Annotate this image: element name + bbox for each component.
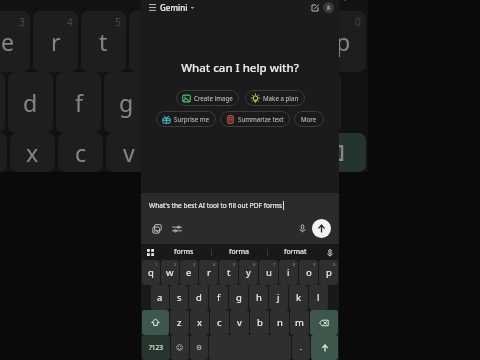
button[interactable]: t bbox=[81, 11, 126, 72]
button[interactable]: Voice input bbox=[295, 221, 310, 236]
button[interactable]: o bbox=[273, 11, 318, 72]
button[interactable]: Summarize text bbox=[220, 111, 290, 127]
button[interactable]: y bbox=[239, 260, 258, 285]
button[interactable]: Backspace bbox=[310, 310, 338, 335]
button[interactable]: u bbox=[177, 11, 222, 72]
staticText: 9 bbox=[313, 262, 316, 268]
button[interactable]: l bbox=[309, 285, 328, 310]
button[interactable]: More bbox=[294, 111, 324, 127]
button[interactable]: Backspace bbox=[298, 133, 366, 172]
button[interactable]: z bbox=[170, 310, 189, 335]
button[interactable]: p bbox=[319, 260, 338, 285]
button[interactable]: i bbox=[225, 11, 270, 72]
button[interactable]: e bbox=[180, 260, 198, 285]
staticText: 8 bbox=[293, 262, 296, 268]
button[interactable]: forma bbox=[61, 0, 194, 3]
staticText: z bbox=[177, 316, 182, 329]
staticText: Create image bbox=[194, 94, 233, 102]
staticText: Surprise me bbox=[174, 115, 210, 123]
button[interactable]: h bbox=[249, 285, 268, 310]
button[interactable]: Settings bbox=[190, 335, 208, 360]
staticText: v bbox=[123, 137, 135, 169]
staticText: 6 bbox=[253, 262, 256, 268]
button[interactable]: m bbox=[290, 310, 309, 335]
button[interactable]: s bbox=[0, 72, 5, 133]
button[interactable]: . bbox=[292, 335, 310, 360]
button[interactable]: r bbox=[199, 260, 218, 285]
button[interactable]: d bbox=[8, 72, 53, 133]
button[interactable]: g bbox=[229, 285, 248, 310]
button[interactable]: e bbox=[0, 11, 30, 72]
button[interactable]: Shift bbox=[142, 310, 169, 335]
staticText: g bbox=[236, 291, 242, 304]
button[interactable]: k bbox=[289, 285, 308, 310]
button[interactable]: a bbox=[151, 285, 169, 310]
button[interactable]: b bbox=[250, 310, 269, 335]
button[interactable]: forma bbox=[212, 247, 267, 257]
button[interactable]: j bbox=[269, 285, 288, 310]
button[interactable]: z bbox=[0, 133, 7, 172]
staticText: 3 bbox=[193, 262, 196, 268]
button[interactable]: Keyboard options bbox=[144, 246, 157, 259]
button[interactable]: i bbox=[279, 260, 298, 285]
button[interactable]: Emoji bbox=[171, 335, 189, 360]
button[interactable]: x bbox=[10, 133, 55, 172]
staticText: ☺ bbox=[176, 344, 184, 352]
button[interactable]: Account bbox=[323, 2, 334, 13]
button[interactable]: Add image bbox=[149, 221, 164, 236]
button[interactable]: Voice typing bbox=[323, 246, 336, 259]
button[interactable]: j bbox=[200, 72, 245, 133]
button[interactable]: s bbox=[170, 285, 188, 310]
button[interactable]: k bbox=[248, 72, 293, 133]
button[interactable]: Make a plan bbox=[245, 90, 305, 106]
button[interactable]: format bbox=[268, 247, 323, 257]
button[interactable]: v bbox=[106, 133, 151, 172]
button[interactable]: t bbox=[219, 260, 238, 285]
button[interactable]: d bbox=[189, 285, 208, 310]
staticText: What's the best AI tool to fill out PDF … bbox=[149, 201, 283, 210]
button[interactable]: w bbox=[161, 260, 179, 285]
button[interactable]: v bbox=[230, 310, 249, 335]
button[interactable]: l bbox=[296, 72, 341, 133]
button[interactable]: u bbox=[259, 260, 278, 285]
staticText: What can I help with? bbox=[181, 60, 299, 76]
button[interactable]: Voice typing bbox=[329, 0, 361, 8]
button[interactable]: r bbox=[33, 11, 78, 72]
staticText: 4 bbox=[67, 15, 73, 29]
button[interactable]: forms bbox=[157, 247, 211, 257]
button[interactable]: c bbox=[58, 133, 103, 172]
button[interactable]: Create image bbox=[176, 90, 239, 106]
button[interactable]: g bbox=[104, 72, 149, 133]
button[interactable]: Menu bbox=[146, 1, 158, 13]
button[interactable]: c bbox=[210, 310, 229, 335]
button[interactable]: Enter bbox=[311, 335, 338, 360]
staticText: n bbox=[277, 316, 283, 329]
staticText: o bbox=[306, 266, 312, 279]
button[interactable]: o bbox=[299, 260, 318, 285]
button[interactable]: Tools bbox=[169, 221, 184, 236]
button[interactable]: h bbox=[152, 72, 197, 133]
staticText: forma bbox=[229, 247, 250, 257]
button[interactable]: x bbox=[190, 310, 209, 335]
button[interactable]: f bbox=[56, 72, 101, 133]
button[interactable]: q bbox=[142, 260, 160, 285]
button[interactable]: p bbox=[321, 11, 366, 72]
button[interactable]: f bbox=[209, 285, 228, 310]
button[interactable]: Send bbox=[312, 219, 331, 238]
button[interactable]: n bbox=[270, 310, 289, 335]
button[interactable]: ?123 bbox=[142, 335, 170, 360]
button[interactable]: New chat bbox=[308, 1, 321, 14]
button[interactable]: Surprise me bbox=[156, 111, 216, 127]
